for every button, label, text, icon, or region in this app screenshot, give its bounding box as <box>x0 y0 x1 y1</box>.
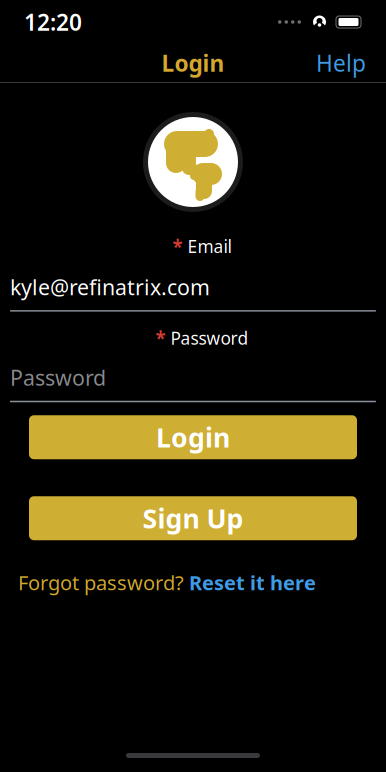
button[interactable]: Login <box>29 415 357 459</box>
staticText: Email <box>187 235 231 258</box>
staticText: Password <box>170 326 248 349</box>
staticText: Forgot password? <box>18 569 184 596</box>
staticText: 12:20 <box>24 7 82 37</box>
button[interactable]: Forgot password? <box>0 563 386 602</box>
button[interactable]: Help <box>304 40 378 86</box>
staticText: * <box>155 326 165 350</box>
staticText: Sign Up <box>142 500 243 536</box>
staticText: Login <box>161 48 224 78</box>
staticText: Help <box>316 48 366 78</box>
staticText: * <box>172 234 182 259</box>
staticText: Password <box>10 363 106 392</box>
staticText: Login <box>156 419 230 455</box>
staticText: kyle@refinatrix.com <box>10 273 210 301</box>
staticText: Reset it here <box>189 569 316 596</box>
button[interactable]: Sign Up <box>29 496 357 540</box>
